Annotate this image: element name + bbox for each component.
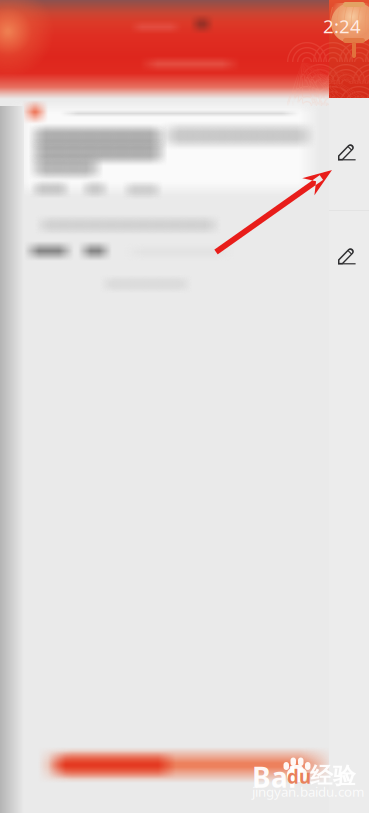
staticText: 经验 [310, 762, 356, 790]
staticText: 2:24 [323, 14, 361, 38]
button[interactable]: Edit [327, 228, 367, 286]
staticText: Bai [252, 758, 296, 796]
staticText: jingyan.baidu.com [252, 783, 364, 800]
button[interactable]: Edit [327, 124, 367, 182]
staticText: du [287, 764, 311, 789]
